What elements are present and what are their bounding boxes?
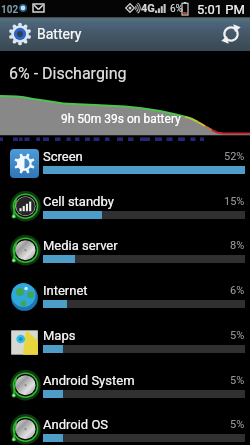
staticText: 4G: [141, 2, 155, 15]
staticText: 52%: [224, 150, 245, 163]
button[interactable]: Media server: [0, 230, 250, 275]
button[interactable]: Cell standby: [0, 186, 250, 231]
staticText: 15%: [224, 195, 245, 208]
button[interactable]: Screen: [0, 141, 250, 186]
staticText: 9h 50m 39s on battery: [61, 112, 181, 126]
staticText: 6%: [230, 284, 245, 297]
staticText: Maps: [43, 328, 76, 343]
staticText: 102: [1, 4, 19, 16]
staticText: 5%: [230, 374, 245, 387]
staticText: Android OS: [43, 417, 109, 432]
staticText: 6% - Discharging: [9, 64, 127, 83]
staticText: Cell standby: [43, 194, 114, 209]
staticText: Android System: [43, 373, 135, 388]
staticText: 8%: [230, 239, 245, 252]
staticText: 5:01 PM: [197, 2, 245, 17]
staticText: Internet: [43, 283, 88, 298]
button[interactable]: Refresh: [212, 17, 250, 51]
staticText: 5%: [230, 329, 245, 342]
staticText: 5%: [230, 418, 245, 431]
button[interactable]: Android OS: [0, 409, 250, 445]
staticText: 6%: [170, 3, 183, 15]
button[interactable]: Internet: [0, 275, 250, 320]
staticText: Screen: [43, 149, 83, 164]
button[interactable]: Maps: [0, 320, 250, 365]
staticText: Battery: [37, 26, 82, 42]
button[interactable]: Android System: [0, 365, 250, 410]
staticText: Media server: [43, 238, 118, 253]
